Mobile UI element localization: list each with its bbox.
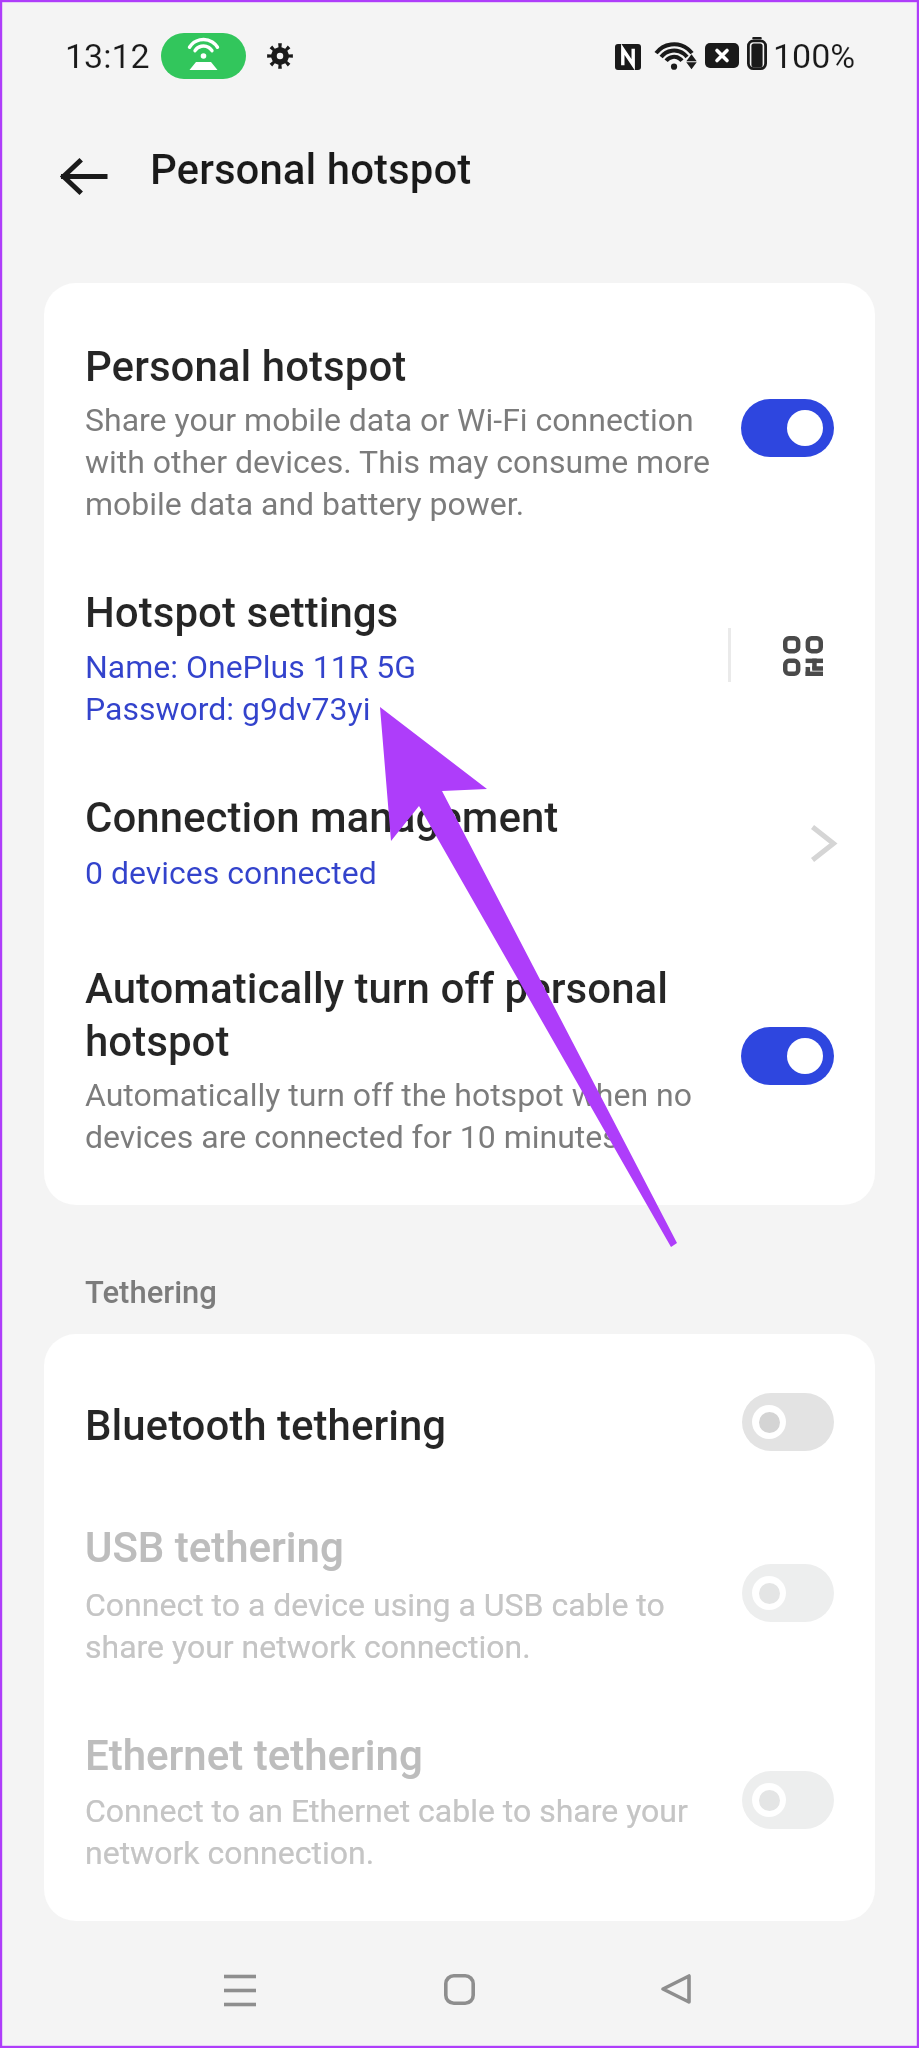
staticText: Share your mobile data or Wi-Fi connecti…	[85, 398, 719, 524]
button[interactable]: USB tethering	[44, 1472, 875, 1709]
staticText: 100%	[773, 36, 856, 76]
staticText: Connect to an Ethernet cable to share yo…	[85, 1789, 719, 1873]
staticText: 0 devices connected	[85, 851, 377, 893]
button[interactable]: Show QR code	[756, 609, 850, 703]
staticText: Bluetooth tethering	[85, 1398, 447, 1451]
button[interactable]: Toggle on	[741, 1027, 834, 1085]
staticText: Ethernet tethering	[85, 1728, 423, 1781]
button[interactable]: Connection management	[44, 753, 875, 913]
staticText: 13:12	[65, 36, 150, 76]
staticText: Name: OnePlus 11R 5G	[85, 645, 417, 687]
button[interactable]: Toggle off	[742, 1564, 834, 1622]
staticText: Hotspot settings	[85, 585, 399, 638]
button[interactable]: Toggle off	[742, 1393, 834, 1451]
staticText: Password: g9dv73yi	[85, 687, 371, 729]
staticText: Connect to a device using a USB cable to…	[85, 1583, 719, 1667]
button[interactable]: Bluetooth tethering	[44, 1334, 875, 1494]
button[interactable]: Recent apps	[195, 1944, 285, 2034]
staticText: Automatically turn off the hotspot when …	[85, 1073, 719, 1157]
staticText: Automatically turn off personal hotspot	[85, 961, 719, 1067]
button[interactable]: Hotspot settings	[85, 585, 719, 729]
button[interactable]: Personal hotspot	[44, 283, 875, 553]
button[interactable]: Toggle on	[741, 399, 834, 457]
button[interactable]: Ethernet tethering	[44, 1657, 875, 1921]
button[interactable]: Automatically turn off personal hotspot	[44, 913, 875, 1205]
staticText: Personal hotspot	[85, 339, 407, 392]
staticText: Tethering	[85, 1276, 217, 1310]
button[interactable]: Back	[631, 1944, 721, 2034]
staticText: Connection management	[85, 790, 559, 843]
staticText: Personal hotspot	[150, 145, 472, 194]
button[interactable]: Toggle off	[742, 1771, 834, 1829]
staticText: USB tethering	[85, 1520, 344, 1573]
button[interactable]: Back	[48, 140, 120, 212]
button[interactable]: Home	[414, 1944, 504, 2034]
